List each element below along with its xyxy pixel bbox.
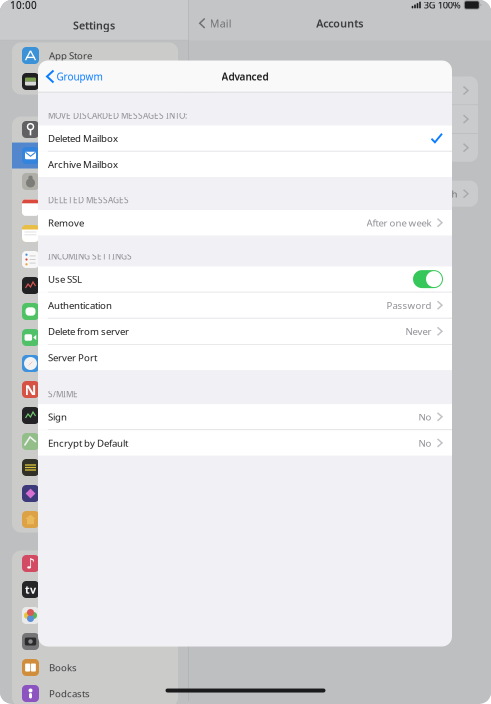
staticText: Stocks — [49, 409, 78, 422]
button[interactable]: Use SSL — [38, 266, 452, 292]
staticText: Never — [405, 325, 431, 338]
staticText: App Store — [49, 49, 92, 62]
button[interactable]: ♪ — [12, 550, 178, 576]
staticText: INCOMING SETTINGS — [48, 251, 132, 262]
staticText: Authentication — [48, 299, 112, 312]
button[interactable]: Authentication — [38, 292, 452, 318]
button[interactable]: Maps — [12, 428, 178, 454]
staticText: Settings — [73, 18, 115, 32]
staticText: Wallet — [49, 75, 75, 88]
staticText: Groupwm — [56, 70, 102, 83]
button[interactable]: Server Port — [38, 345, 452, 370]
staticText: S/MIME — [48, 388, 78, 400]
button[interactable]: Safari — [12, 350, 178, 376]
staticText: Mail — [210, 16, 232, 30]
staticText: Camera — [49, 635, 83, 648]
staticText: Deleted Mailbox — [48, 132, 118, 145]
button[interactable]: Delete from server — [38, 319, 452, 344]
button[interactable]: Shortcuts — [12, 480, 178, 506]
staticText: Notes — [49, 227, 75, 240]
button[interactable]: Messages — [12, 298, 178, 324]
staticText: Use SSL — [48, 273, 82, 286]
staticText: Books — [49, 661, 77, 674]
staticText: 3G 100% — [422, 0, 461, 11]
staticText: Delete from server — [48, 325, 129, 338]
button[interactable]: Photos — [12, 602, 178, 628]
staticText: ♪ — [26, 555, 35, 572]
staticText: Server Port — [48, 351, 97, 364]
staticText: Fetch — [433, 187, 457, 200]
button[interactable]: Contacts — [12, 168, 178, 194]
staticText: Maps — [49, 435, 74, 448]
staticText: Passwords — [49, 123, 99, 136]
button[interactable]: Home — [12, 506, 178, 532]
button[interactable]: Notes — [12, 220, 178, 246]
staticText: Encrypt by Default — [48, 436, 128, 449]
button[interactable]: Camera — [12, 628, 178, 654]
staticText: Mail — [49, 149, 67, 162]
button[interactable]: Passwords — [12, 116, 178, 142]
button[interactable]: Calendar — [12, 194, 178, 220]
staticText: No — [418, 410, 431, 423]
button[interactable]: Stocks — [12, 402, 178, 428]
staticText: No — [418, 436, 431, 449]
button[interactable]: Archive Mailbox — [38, 152, 452, 177]
staticText: Sign — [48, 410, 67, 423]
staticText: N — [24, 380, 36, 399]
staticText: Accounts — [316, 16, 363, 30]
button[interactable]: Encrypt by Default — [38, 430, 452, 456]
staticText: Podcasts — [49, 687, 90, 700]
button[interactable]: Books — [12, 654, 178, 680]
staticText: Advanced — [221, 70, 268, 83]
staticText: Freeform — [49, 279, 90, 292]
staticText: Messages — [49, 305, 94, 318]
staticText: Safari — [49, 357, 73, 370]
staticText: Contacts — [49, 175, 88, 188]
staticText: tv — [25, 582, 36, 597]
staticText: Reminders — [49, 253, 97, 266]
button[interactable]: Groupwm — [38, 62, 102, 90]
button[interactable]: Deleted Mailbox — [38, 125, 452, 151]
button[interactable]: N — [12, 376, 178, 402]
button[interactable]: Podcasts — [12, 680, 178, 704]
button[interactable]: App Store — [12, 42, 178, 68]
button[interactable]: Remove — [38, 210, 452, 235]
button[interactable]: Freeform — [12, 272, 178, 298]
staticText: FaceTime — [49, 331, 90, 344]
button[interactable]: Translate — [12, 454, 178, 480]
staticText: After one week — [366, 216, 431, 229]
button[interactable]: tv — [12, 576, 178, 602]
button[interactable]: FaceTime — [12, 324, 178, 350]
staticText: DELETED MESSAGES — [48, 194, 129, 206]
staticText: News — [49, 383, 74, 396]
button[interactable]: Mail — [12, 142, 178, 168]
staticText: Remove — [48, 216, 84, 229]
staticText: Password — [386, 299, 431, 312]
staticText: Calendar — [49, 201, 88, 214]
staticText: Archive Mailbox — [48, 158, 118, 171]
button[interactable]: Reminders — [12, 246, 178, 272]
staticText: 10:00 — [10, 0, 37, 12]
button[interactable]: Wallet — [12, 68, 178, 94]
button[interactable]: Sign — [38, 404, 452, 429]
button[interactable]: Mail — [189, 13, 232, 33]
staticText: MOVE DISCARDED MESSAGES INTO: — [48, 110, 187, 121]
